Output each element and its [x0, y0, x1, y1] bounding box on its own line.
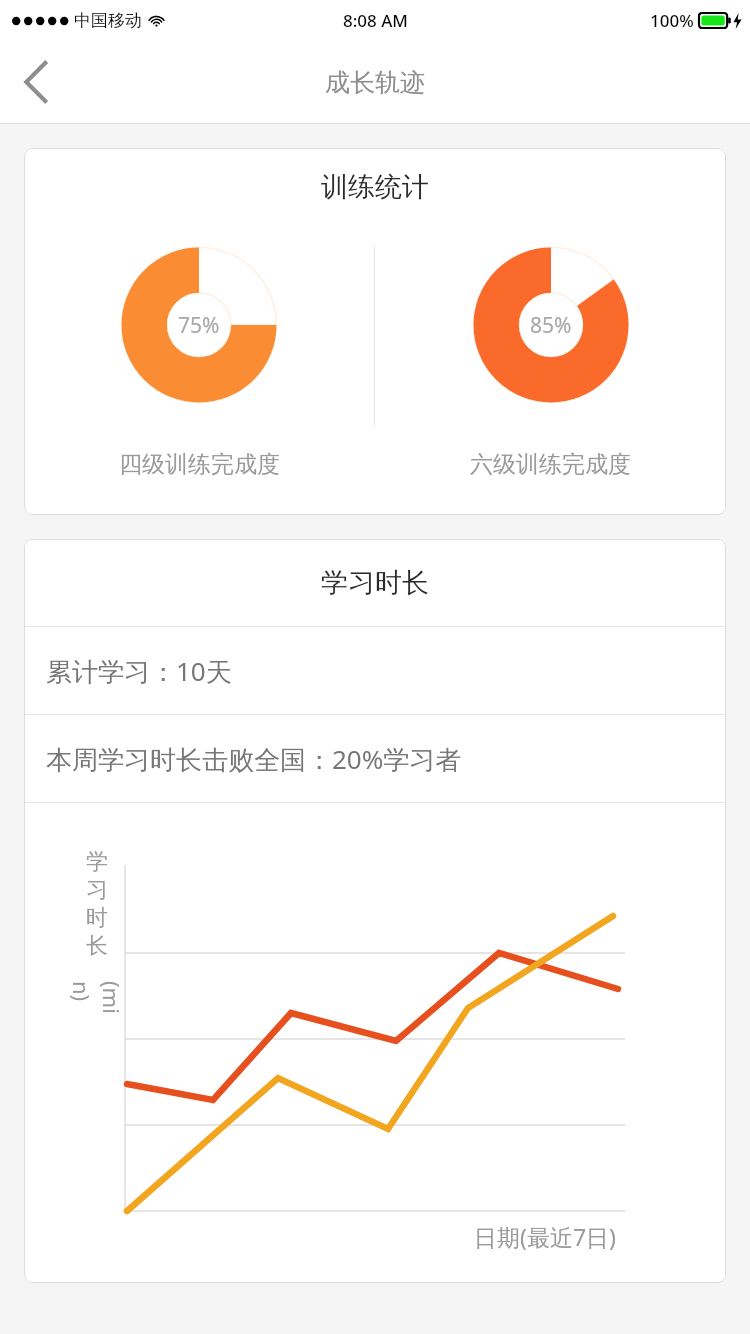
button[interactable]: 本周学习时长击败全国：20%学习者 [24, 715, 726, 802]
staticText: 中国移动 [74, 10, 142, 31]
staticText: 成长轨迹 [325, 67, 425, 98]
staticText: 100% [650, 9, 694, 32]
staticText: 累计学习：10天 [46, 653, 232, 689]
button[interactable]: 累计学习：10天 [24, 627, 726, 714]
staticText: 学习时长 [321, 566, 429, 600]
staticText: 8:08 AM [343, 9, 408, 32]
button[interactable]: Back [0, 40, 72, 124]
staticText: 四级训练完成度 [119, 450, 280, 479]
staticText: 时 [86, 904, 108, 932]
staticText: 六级训练完成度 [470, 450, 631, 479]
staticText: 日期(最近7日) [474, 1221, 616, 1252]
staticText: 本周学习时长击败全国：20%学习者 [46, 741, 462, 777]
staticText: 75% [178, 311, 220, 340]
staticText: 训练统计 [24, 170, 726, 204]
staticText: 学 [86, 848, 108, 876]
staticText: 85% [530, 311, 572, 340]
staticText: 长 [86, 932, 108, 960]
staticText: 习 [86, 876, 108, 904]
staticText: (min) [67, 981, 127, 1015]
